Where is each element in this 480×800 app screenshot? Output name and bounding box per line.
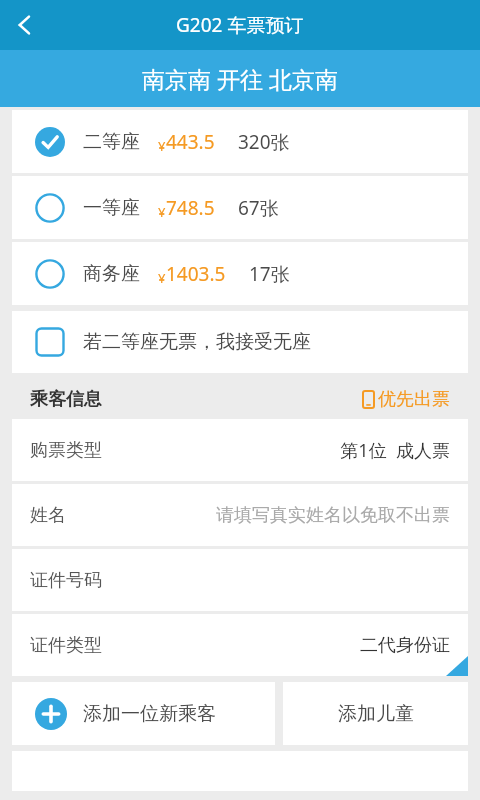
staticText: ¥ [158, 203, 166, 221]
staticText: 67张 [238, 195, 279, 221]
button[interactable]: 购票类型 [12, 419, 468, 481]
staticText: 购票类型 [30, 439, 102, 462]
staticText: ¥ [158, 269, 166, 287]
staticText: 第1位 成人票 [340, 438, 450, 463]
button[interactable]: 商务座 [12, 242, 468, 305]
button[interactable]: 二等座 [12, 110, 468, 173]
staticText: 请填写真实姓名以免取不出票 [216, 504, 450, 527]
staticText: 添加儿童 [338, 702, 414, 726]
button[interactable]: 一等座 [12, 176, 468, 239]
staticText: 1403.5 [166, 261, 226, 287]
staticText: 证件号码 [30, 569, 102, 592]
staticText: 一等座 [83, 196, 140, 220]
button[interactable]: 添加儿童 [283, 682, 468, 745]
staticText: 商务座 [83, 262, 140, 286]
staticText: 二代身份证 [360, 634, 450, 657]
button[interactable]: Back [0, 0, 50, 50]
button[interactable]: 添加一位新乘客 [12, 682, 275, 745]
button[interactable]: 若二等座无票，我接受无座 [12, 311, 468, 373]
staticText: 优先出票 [378, 388, 450, 411]
staticText: 若二等座无票，我接受无座 [83, 330, 311, 354]
button[interactable]: 证件号码 [12, 549, 468, 611]
staticText: ¥ [158, 137, 166, 155]
button[interactable]: 优先出票 [363, 388, 450, 411]
staticText: 320张 [238, 129, 290, 155]
staticText: G202 车票预订 [176, 12, 304, 38]
staticText: 姓名 [30, 504, 66, 527]
button[interactable]: 证件类型 [12, 614, 468, 676]
staticText: 南京南 开往 北京南 [142, 63, 338, 94]
staticText: 443.5 [166, 129, 215, 155]
staticText: 748.5 [166, 195, 215, 221]
staticText: 证件类型 [30, 634, 102, 657]
staticText: 二等座 [83, 130, 140, 154]
staticText: 添加一位新乘客 [83, 702, 216, 726]
staticText: 乘客信息 [30, 388, 102, 411]
staticText: 17张 [249, 261, 290, 287]
button[interactable]: 姓名 [12, 484, 468, 546]
